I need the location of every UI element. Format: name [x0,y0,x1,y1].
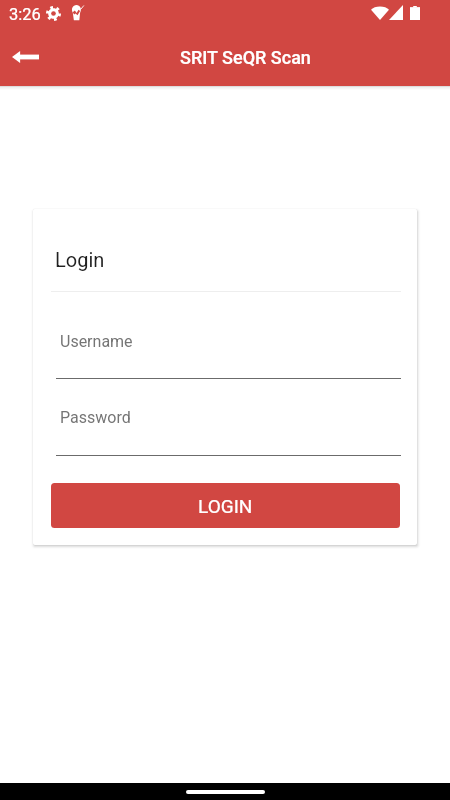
staticText: LOGIN [198,495,253,517]
staticText: SRIT SeQR Scan [180,47,311,68]
button[interactable]: Username [56,324,401,380]
button[interactable]: Password [56,400,401,457]
staticText: Username [60,332,133,351]
button[interactable]: LOGIN [51,483,400,528]
staticText: 3:26 [9,5,41,24]
staticText: Login [55,248,105,271]
staticText: Password [60,408,131,427]
button[interactable]: Home [186,790,265,794]
button[interactable]: Back [1,34,49,82]
